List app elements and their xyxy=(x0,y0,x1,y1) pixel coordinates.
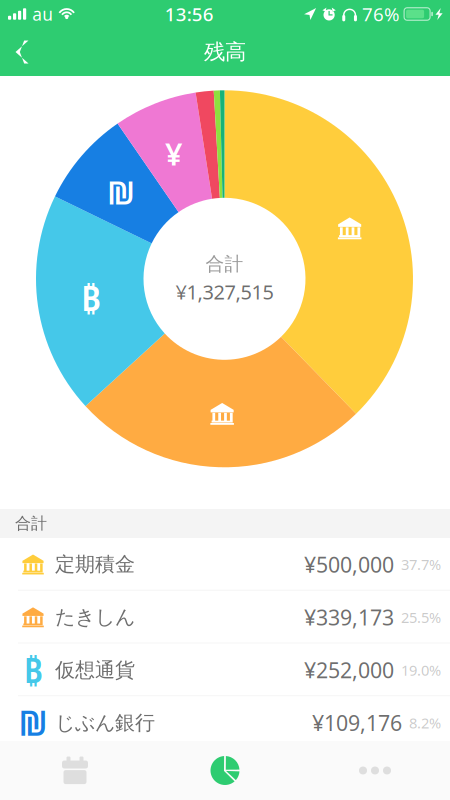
staticText: ₪ xyxy=(107,171,135,213)
button[interactable]: Back xyxy=(0,28,44,76)
button[interactable]: ₪ xyxy=(0,696,450,749)
staticText: ¥109,176 xyxy=(312,709,402,737)
staticText: 残高 xyxy=(204,39,246,65)
button[interactable]: たきしん xyxy=(0,591,450,644)
staticText: ¥339,173 xyxy=(304,603,394,631)
staticText: 定期積金 xyxy=(55,552,135,577)
staticText: au xyxy=(32,2,53,25)
button[interactable]: Balance xyxy=(150,741,300,800)
staticText: 8.2% xyxy=(409,713,441,733)
staticText: ¥ xyxy=(165,133,183,174)
button[interactable]: 定期積金 xyxy=(0,538,450,591)
staticText: 合計 xyxy=(205,253,243,275)
staticText: ¥500,000 xyxy=(304,550,394,578)
staticText: 76% xyxy=(362,2,400,26)
staticText: ₪ xyxy=(18,701,47,745)
button[interactable]: More xyxy=(300,741,450,800)
staticText: じぶん銀行 xyxy=(55,710,155,735)
staticText: ¥1,327,515 xyxy=(175,278,273,305)
button[interactable]: ₿ xyxy=(0,644,450,696)
staticText: 合計 xyxy=(15,514,47,533)
staticText: たきしん xyxy=(55,605,135,629)
staticText: ₿ xyxy=(23,648,42,692)
staticText: 19.0% xyxy=(401,660,441,680)
staticText: 37.7% xyxy=(401,555,441,574)
staticText: 25.5% xyxy=(401,607,441,627)
button[interactable]: Calendar xyxy=(0,741,150,800)
staticText: ₿ xyxy=(81,275,101,321)
staticText: 仮想通貨 xyxy=(55,658,135,682)
staticText: 13:56 xyxy=(165,2,214,26)
staticText: ¥252,000 xyxy=(304,656,394,684)
